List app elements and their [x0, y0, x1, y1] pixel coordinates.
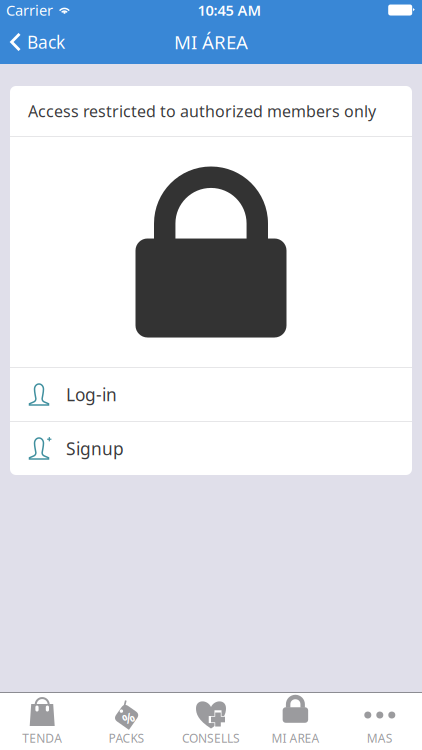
staticText: CONSELLS [182, 730, 240, 746]
staticText: MAS [367, 730, 393, 746]
button[interactable]: Back [0, 24, 75, 59]
button[interactable]: Log-in [10, 368, 412, 421]
staticText: Signup [66, 437, 124, 460]
staticText: MI ÁREA [174, 30, 248, 54]
staticText: Carrier [6, 0, 53, 20]
staticText: MI AREA [271, 730, 319, 746]
staticText: % [122, 709, 134, 727]
button[interactable]: MAS [338, 693, 422, 750]
staticText: TENDA [22, 730, 62, 746]
staticText: Log-in [66, 383, 117, 406]
staticText: PACKS [109, 730, 145, 746]
button[interactable]: MI AREA [253, 693, 338, 750]
button[interactable]: CONSELLS [169, 693, 253, 750]
button[interactable]: % [84, 693, 169, 750]
staticText: Access restricted to authorized members … [28, 100, 376, 122]
button[interactable]: Signup [10, 422, 412, 475]
staticText: 10:45 AM [198, 0, 262, 20]
staticText: Back [27, 30, 65, 53]
button[interactable]: TENDA [0, 693, 84, 750]
